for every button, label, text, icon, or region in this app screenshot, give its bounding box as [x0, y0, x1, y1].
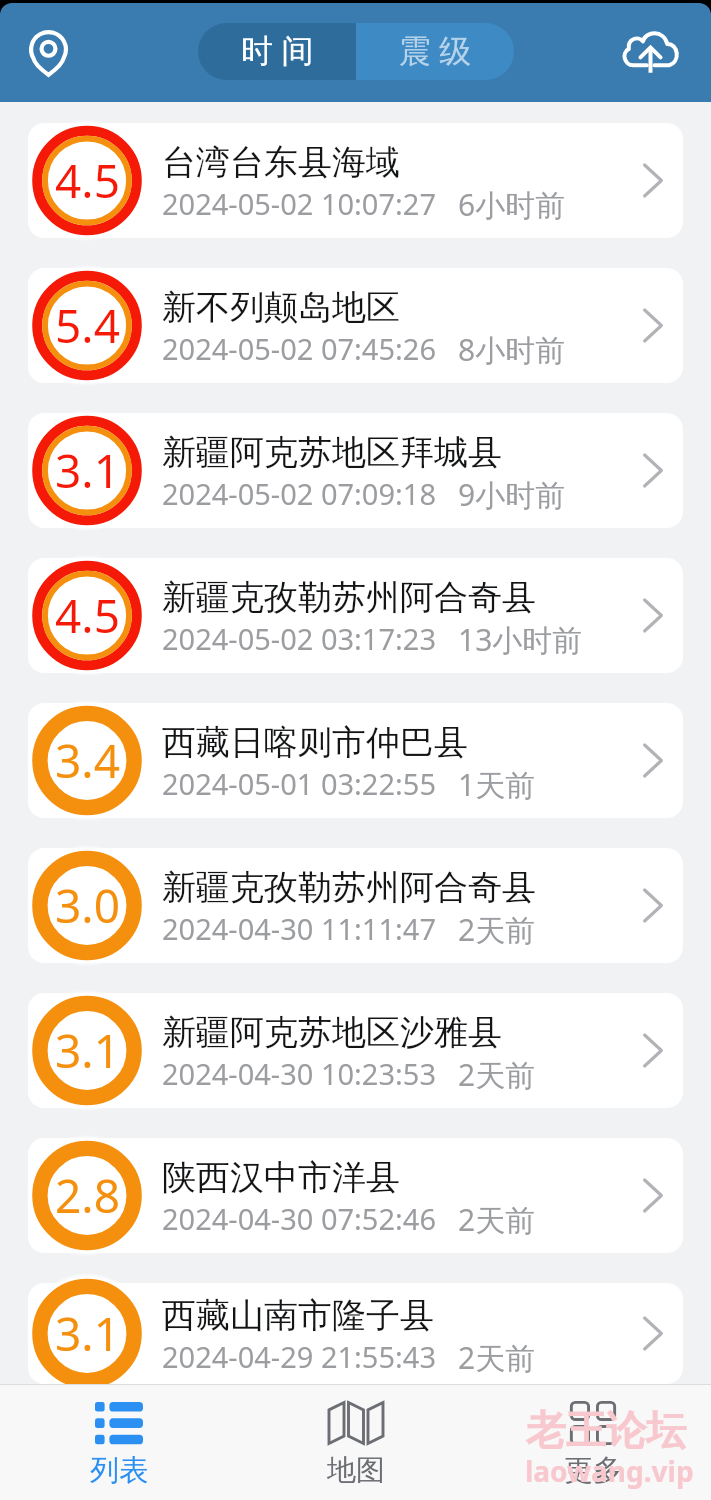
staticText: 列表	[90, 1452, 148, 1489]
staticText: 2天前	[458, 1199, 536, 1240]
staticText: 老王论坛	[526, 1405, 686, 1455]
button[interactable]: 更多	[474, 1385, 711, 1500]
staticText: 地图	[327, 1452, 385, 1489]
button[interactable]: 新疆阿克苏地区拜城县	[28, 413, 683, 528]
staticText: 震 级	[399, 28, 472, 72]
button[interactable]: 时 间	[198, 23, 356, 80]
staticText: 2024-04-30 11:11:47	[162, 909, 436, 948]
button[interactable]: 新不列颠岛地区	[28, 268, 683, 383]
button[interactable]: Location	[9, 14, 87, 92]
staticText: 5.4	[55, 294, 120, 357]
staticText: 2024-05-01 03:22:55	[162, 764, 436, 803]
staticText: 13小时前	[458, 619, 583, 660]
staticText: 8小时前	[458, 329, 566, 370]
staticText: 新疆阿克苏地区拜城县	[162, 431, 502, 474]
staticText: 新疆克孜勒苏州阿合奇县	[162, 866, 536, 909]
staticText: 3.0	[55, 874, 120, 937]
staticText: 2024-05-02 10:07:27	[162, 184, 436, 223]
button[interactable]: 震 级	[356, 23, 514, 80]
staticText: 新不列颠岛地区	[162, 286, 400, 329]
staticText: 2天前	[458, 1337, 536, 1378]
button[interactable]: Upload	[611, 14, 689, 92]
staticText: 6小时前	[458, 184, 566, 225]
button[interactable]: 西藏日喀则市仲巴县	[28, 703, 683, 818]
staticText: 3.1	[55, 439, 120, 502]
staticText: 3.1	[55, 1019, 120, 1082]
staticText: 2天前	[458, 1054, 536, 1095]
staticText: 2天前	[458, 909, 536, 950]
staticText: 2024-05-02 07:09:18	[162, 474, 436, 513]
staticText: 2024-04-30 07:52:46	[162, 1199, 436, 1238]
button[interactable]: 地图	[237, 1385, 474, 1500]
button[interactable]: 陕西汉中市洋县	[28, 1138, 683, 1253]
staticText: 陕西汉中市洋县	[162, 1156, 400, 1199]
button[interactable]: 西藏山南市隆子县	[28, 1283, 683, 1384]
staticText: 西藏日喀则市仲巴县	[162, 721, 468, 764]
staticText: 更多	[564, 1452, 622, 1489]
staticText: 2.8	[55, 1164, 120, 1227]
button[interactable]: 新疆克孜勒苏州阿合奇县	[28, 558, 683, 673]
staticText: 时 间	[241, 28, 314, 72]
button[interactable]: 新疆阿克苏地区沙雅县	[28, 993, 683, 1108]
button[interactable]: 新疆克孜勒苏州阿合奇县	[28, 848, 683, 963]
staticText: 4.5	[55, 149, 120, 212]
button[interactable]: 列表	[0, 1385, 237, 1500]
staticText: 4.5	[55, 584, 120, 647]
staticText: 2024-05-02 07:45:26	[162, 329, 436, 368]
staticText: 台湾台东县海域	[162, 141, 400, 184]
staticText: 2024-04-30 10:23:53	[162, 1054, 436, 1093]
staticText: 9小时前	[458, 474, 566, 515]
staticText: 新疆克孜勒苏州阿合奇县	[162, 576, 536, 619]
staticText: 新疆阿克苏地区沙雅县	[162, 1011, 502, 1054]
staticText: laowang.vip	[525, 1452, 694, 1490]
button[interactable]: 台湾台东县海域	[28, 123, 683, 238]
staticText: 3.4	[55, 729, 120, 792]
staticText: 西藏山南市隆子县	[162, 1294, 434, 1337]
staticText: 3.1	[55, 1302, 120, 1365]
staticText: 2024-05-02 03:17:23	[162, 619, 436, 658]
staticText: 1天前	[458, 764, 536, 805]
staticText: 2024-04-29 21:55:43	[162, 1337, 436, 1376]
